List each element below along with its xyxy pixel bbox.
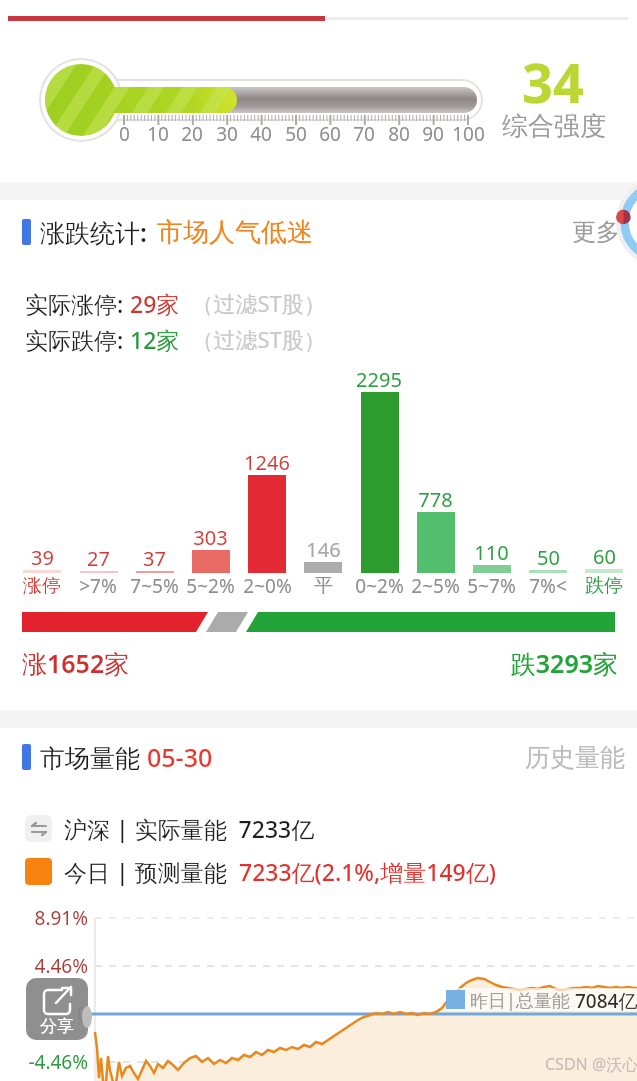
staticText: 实际涨停:: [25, 288, 130, 316]
staticText: 60: [593, 543, 616, 570]
staticText: 跌3293家: [510, 646, 618, 680]
staticText: 0~2%: [355, 573, 404, 599]
staticText: 37: [143, 545, 166, 572]
button[interactable]: 分享: [26, 978, 88, 1040]
staticText: 7233亿(2.1%,增量149亿): [239, 856, 496, 886]
button[interactable]: 涨跌统计:: [22, 212, 442, 252]
staticText: 29家: [130, 288, 180, 316]
staticText: 昨日|总量能: [470, 988, 575, 1011]
staticText: 7~5%: [130, 573, 179, 599]
staticText: 303: [193, 524, 228, 551]
staticText: 7%<: [529, 573, 567, 599]
staticText: 更多: [572, 217, 620, 247]
staticText: （过滤ST股）: [180, 288, 326, 316]
staticText: 10: [147, 121, 169, 147]
button[interactable]: [610, 174, 637, 270]
staticText: 0: [119, 121, 130, 147]
staticText: 2295: [356, 366, 402, 393]
staticText: 30: [216, 121, 238, 147]
staticText: 90: [422, 121, 444, 147]
button[interactable]: 沪深 | 实际量能 7233亿: [25, 813, 315, 843]
staticText: 综合强度: [502, 110, 606, 143]
button[interactable]: 更多: [572, 212, 632, 252]
staticText: 39: [31, 544, 54, 571]
staticText: 0: [77, 1001, 88, 1027]
staticText: （过滤ST股）: [180, 324, 326, 352]
staticText: >7%: [79, 573, 117, 599]
staticText: 5~7%: [467, 573, 516, 599]
staticText: 40: [250, 121, 272, 147]
staticText: 平: [314, 574, 333, 598]
staticText: 70: [353, 121, 375, 147]
staticText: 今日 | 预测量能: [64, 856, 239, 886]
staticText: 20: [181, 121, 203, 147]
staticText: 市场量能: [40, 740, 147, 774]
staticText: 5~2%: [186, 573, 235, 599]
staticText: 涨1652家: [22, 646, 130, 680]
staticText: 146: [306, 536, 341, 563]
staticText: 涨停: [23, 574, 61, 598]
staticText: 778: [418, 486, 453, 513]
staticText: 分享: [40, 1016, 74, 1037]
staticText: 历史量能: [525, 742, 625, 773]
staticText: 沪深 | 实际量能 7233亿: [64, 813, 315, 843]
staticText: 1246: [244, 449, 290, 476]
staticText: 跌停: [585, 574, 623, 598]
button[interactable]: 今日 | 预测量能: [25, 856, 496, 886]
staticText: 27: [87, 545, 110, 572]
staticText: 50: [285, 121, 307, 147]
button[interactable]: 历史量能: [495, 737, 625, 777]
staticText: 50: [537, 544, 560, 571]
staticText: 100: [452, 121, 485, 147]
staticText: 05-30: [147, 740, 213, 774]
staticText: 80: [388, 121, 410, 147]
button[interactable]: 市场量能: [22, 737, 492, 777]
staticText: 2~0%: [243, 573, 292, 599]
staticText: 110: [474, 539, 509, 566]
staticText: 34: [522, 45, 584, 119]
staticText: CSDN @沃心: [545, 1053, 637, 1075]
staticText: 市场人气低迷: [157, 216, 313, 249]
staticText: 12家: [130, 324, 180, 352]
staticText: 2~5%: [411, 573, 460, 599]
staticText: 8.91%: [34, 905, 88, 931]
staticText: 4.46%: [34, 953, 88, 979]
staticText: 涨跌统计:: [40, 215, 147, 249]
staticText: -4.46%: [28, 1049, 88, 1075]
staticText: 7084亿: [575, 988, 637, 1011]
staticText: 实际跌停:: [25, 324, 130, 352]
staticText: 60: [319, 121, 341, 147]
